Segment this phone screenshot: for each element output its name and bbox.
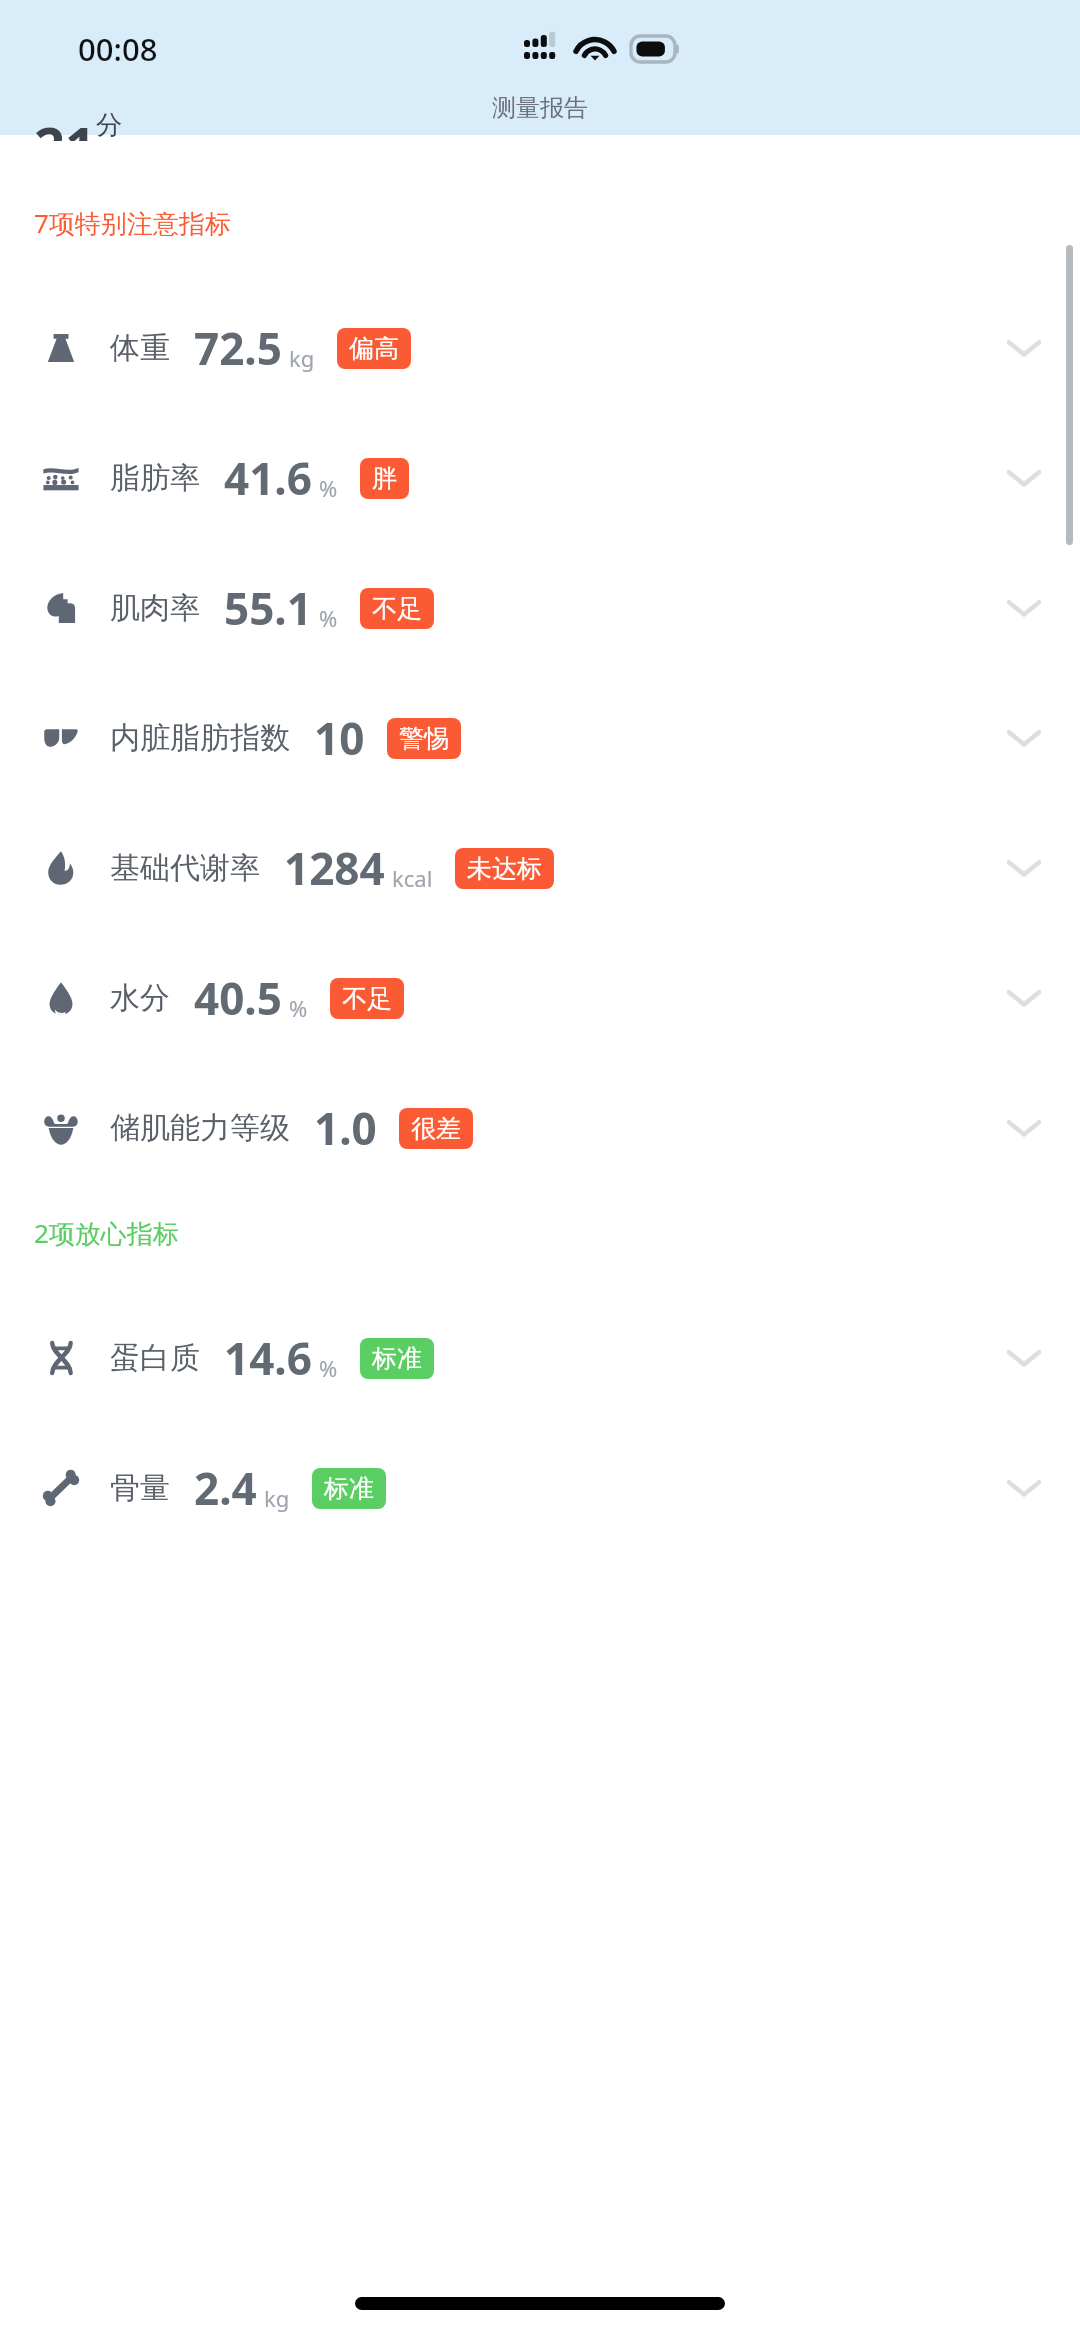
staticText: 警惕 — [399, 723, 449, 754]
staticText: 1284 — [284, 838, 385, 898]
staticText: kcal — [392, 863, 433, 893]
staticText: 不足 — [342, 983, 392, 1014]
staticText: 不足 — [372, 593, 422, 624]
staticText: % — [289, 993, 308, 1023]
button[interactable]: 储肌能力等级 — [0, 1063, 1080, 1193]
staticText: 骨量 — [110, 1469, 170, 1507]
staticText: 测量报告 — [492, 93, 588, 123]
staticText: 72.5 — [194, 318, 282, 378]
staticText: 基础代谢率 — [110, 849, 260, 887]
button[interactable]: 内脏脂肪指数 — [0, 673, 1080, 803]
staticText: 脂肪率 — [110, 459, 200, 497]
staticText: % — [319, 1353, 338, 1383]
staticText: kg — [289, 343, 315, 373]
staticText: 很差 — [411, 1113, 461, 1144]
staticText: 2项放心指标 — [34, 1215, 179, 1251]
other: 展开 储肌能力等级 — [1002, 1106, 1046, 1150]
staticText: 胖 — [372, 463, 397, 494]
staticText: 55.1 — [224, 578, 312, 638]
other: 展开 基础代谢率 — [1002, 846, 1046, 890]
staticText: 体重 — [110, 329, 170, 367]
other: 展开 骨量 — [1002, 1466, 1046, 1510]
staticText: 储肌能力等级 — [110, 1109, 290, 1147]
other: 展开 水分 — [1002, 976, 1046, 1020]
button[interactable]: 骨量 — [0, 1423, 1080, 1553]
button[interactable]: 体重 — [0, 283, 1080, 413]
other: 展开 蛋白质 — [1002, 1336, 1046, 1380]
staticText: 蛋白质 — [110, 1339, 200, 1377]
staticText: 内脏脂肪指数 — [110, 719, 290, 757]
staticText: 标准 — [324, 1473, 374, 1504]
staticText: 40.5 — [194, 968, 282, 1028]
other: 展开 内脏脂肪指数 — [1002, 716, 1046, 760]
staticText: 7项特别注意指标 — [34, 205, 231, 241]
staticText: 偏高 — [349, 333, 399, 364]
staticText: 10 — [314, 708, 365, 768]
staticText: kg — [264, 1483, 290, 1513]
other: 展开 脂肪率 — [1002, 456, 1046, 500]
staticText: 肌肉率 — [110, 589, 200, 627]
staticText: 2.4 — [194, 1458, 257, 1518]
staticText: % — [319, 473, 338, 503]
other: 展开 肌肉率 — [1002, 586, 1046, 630]
button[interactable]: 脂肪率 — [0, 413, 1080, 543]
staticText: 分 — [96, 109, 122, 138]
staticText: 00:08 — [78, 28, 158, 70]
staticText: 41.6 — [224, 448, 312, 508]
button[interactable]: 水分 — [0, 933, 1080, 1063]
button[interactable]: 肌肉率 — [0, 543, 1080, 673]
button[interactable]: 基础代谢率 — [0, 803, 1080, 933]
button[interactable]: 蛋白质 — [0, 1293, 1080, 1423]
other: 展开 体重 — [1002, 326, 1046, 370]
staticText: % — [319, 603, 338, 633]
staticText: 1.0 — [314, 1098, 377, 1158]
staticText: 水分 — [110, 979, 170, 1017]
staticText: 未达标 — [467, 853, 542, 884]
staticText: 14.6 — [224, 1328, 312, 1388]
staticText: 标准 — [372, 1343, 422, 1374]
staticText: 21 — [34, 109, 96, 141]
